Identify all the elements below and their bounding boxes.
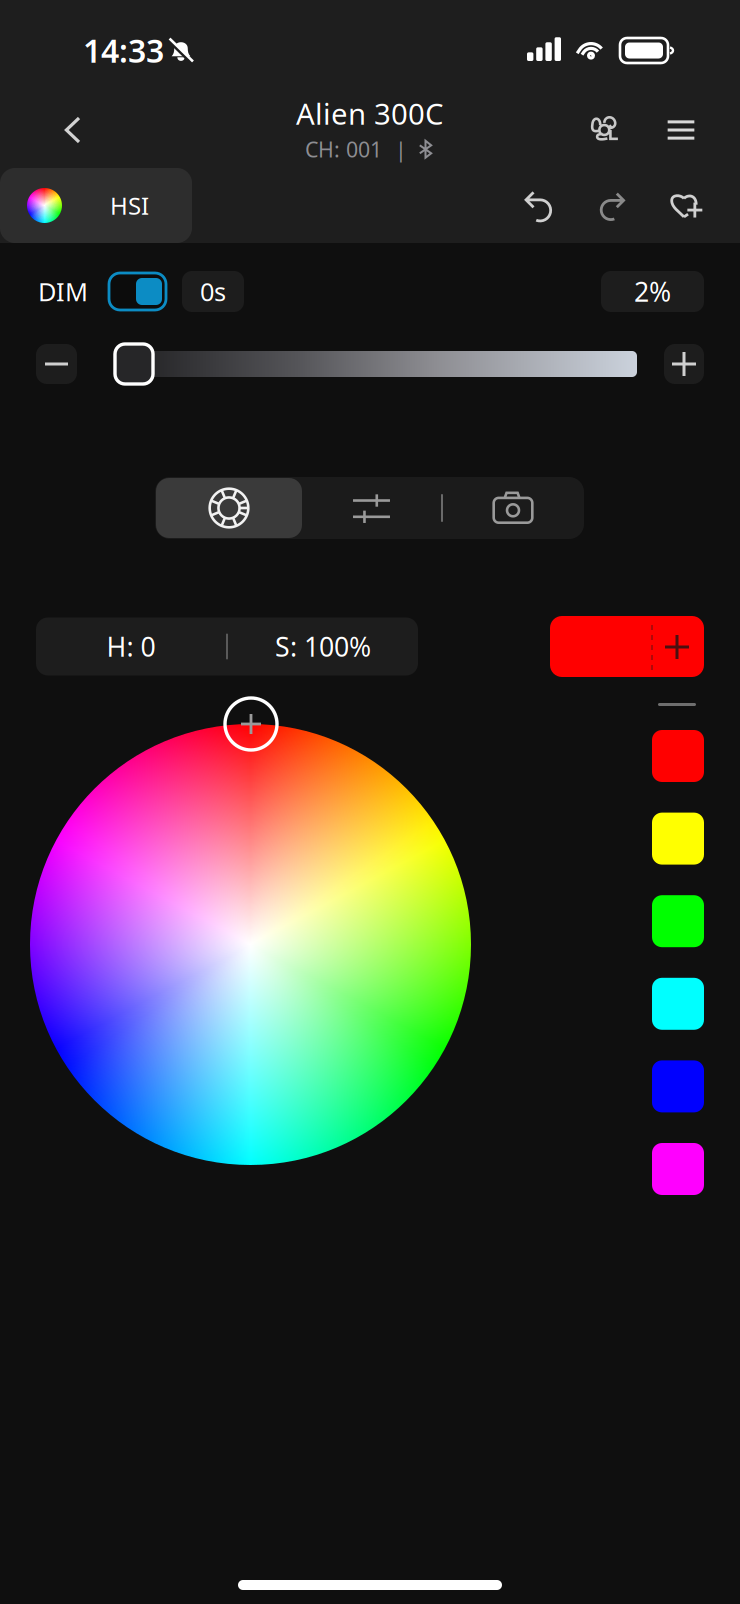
staticText: 2% <box>634 274 671 309</box>
button[interactable]: H: 0 <box>36 617 226 675</box>
button[interactable]: Sliders <box>302 478 441 538</box>
button[interactable]: Fan speed <box>581 105 631 155</box>
staticText: HSI <box>110 190 149 221</box>
button[interactable]: Increase <box>664 344 704 384</box>
button[interactable]: Colour wheel <box>156 478 302 538</box>
staticText: H: 0 <box>106 629 155 664</box>
staticText: DIM <box>38 275 88 308</box>
button[interactable]: Add to favourites <box>661 181 711 231</box>
button[interactable]: Colour preset <box>652 730 704 782</box>
button[interactable]: 2% <box>601 271 704 312</box>
button[interactable]: Camera <box>443 478 583 538</box>
button[interactable]: Menu <box>656 105 706 155</box>
button[interactable]: S: 100% <box>228 617 418 675</box>
button[interactable]: Colour preset <box>652 813 704 865</box>
button[interactable]: Colour preset <box>652 895 704 947</box>
button[interactable]: Colour preset <box>652 978 704 1030</box>
button[interactable]: Colour preset <box>652 1060 704 1112</box>
button[interactable]: Undo <box>516 181 566 231</box>
staticText: | <box>395 135 407 163</box>
button[interactable]: Decrease <box>36 344 77 384</box>
staticText: S: 100% <box>275 629 371 664</box>
staticText: Alien 300C <box>296 94 444 133</box>
button[interactable]: Back <box>45 102 101 158</box>
button[interactable]: Dim toggle <box>109 271 166 312</box>
staticText: 0s <box>200 275 226 308</box>
staticText: 14:33 <box>83 29 164 71</box>
button[interactable]: HSI <box>0 168 192 243</box>
button[interactable]: 0s <box>182 271 244 312</box>
button[interactable]: Add colour preset <box>550 616 704 677</box>
button[interactable]: Redo <box>585 181 635 231</box>
button[interactable]: Colour preset <box>652 1143 704 1195</box>
staticText: CH: 001 <box>305 135 382 163</box>
